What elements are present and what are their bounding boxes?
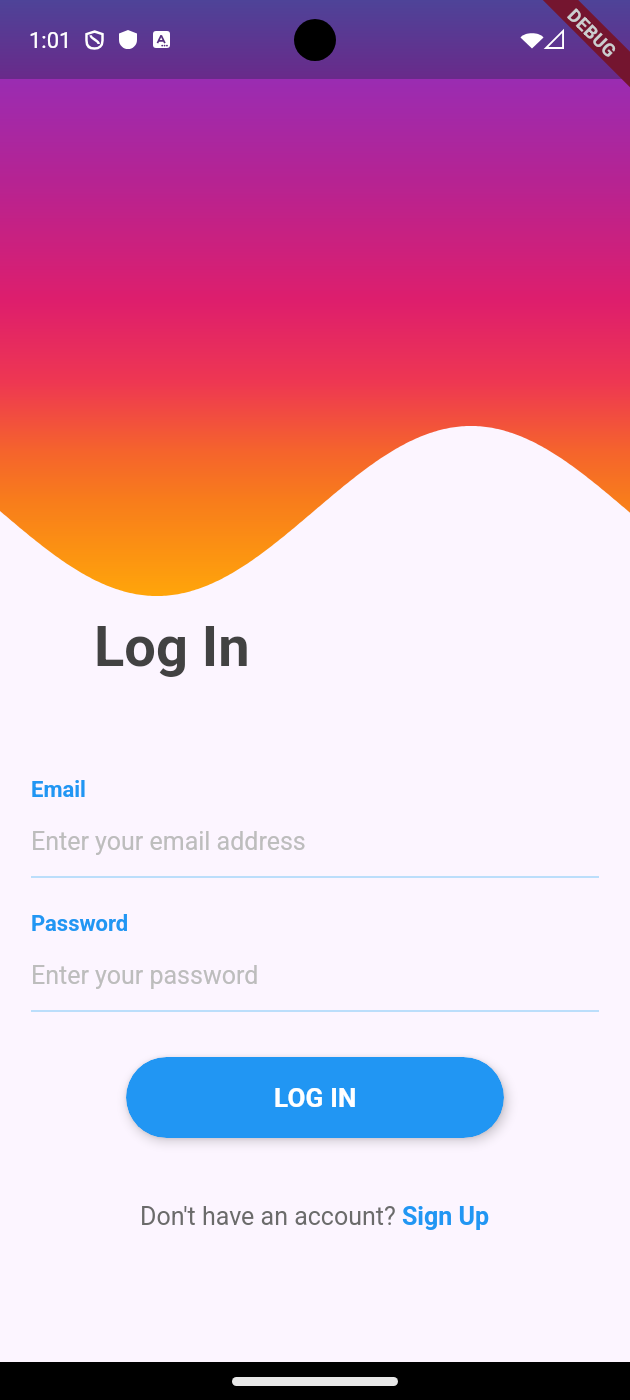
button[interactable]: LOG IN	[126, 1057, 504, 1138]
button[interactable]: Don't have an account? Sign Up	[140, 1202, 490, 1231]
other: Accessibility	[153, 31, 170, 48]
button[interactable]: Password	[31, 911, 599, 1012]
staticText: Log In	[94, 614, 250, 680]
staticText: Email	[31, 777, 86, 803]
staticText: Enter your password	[31, 961, 259, 990]
other: Play Protect	[119, 30, 137, 49]
staticText: LOG IN	[274, 1083, 357, 1113]
other: Mobile signal	[545, 30, 564, 49]
staticText: Don't have an account? Sign Up	[140, 1202, 490, 1231]
staticText: Enter your email address	[31, 827, 306, 856]
staticText: DEBUG	[563, 4, 621, 62]
staticText: 1:01	[29, 28, 72, 54]
button[interactable]: Email	[31, 777, 599, 878]
other: VPN	[85, 30, 104, 50]
staticText: Password	[31, 911, 129, 937]
other: Wi-Fi	[520, 29, 544, 49]
